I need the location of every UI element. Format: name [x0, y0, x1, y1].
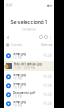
staticText: ▮▮ ▰	[47, 4, 52, 7]
staticText: 15:20	[43, 75, 52, 78]
staticText: elemento	[22, 28, 36, 31]
button[interactable]: Share	[43, 33, 48, 40]
button[interactable]: Cuenta	[4, 41, 54, 49]
button[interactable]: More options	[48, 33, 52, 40]
staticText: ⋮	[48, 35, 52, 39]
staticText: Ordenar	[41, 43, 52, 47]
staticText: 15:20	[43, 102, 52, 105]
staticText: 15:20	[43, 93, 52, 96]
staticText: 10 KB	[13, 95, 22, 98]
staticText: 10 KB	[13, 104, 22, 107]
staticText: 7:32 · 233 KB	[14, 66, 35, 69]
button[interactable]: Foto del archivo.jpg	[4, 61, 54, 71]
button[interactable]: Documento.pdf	[4, 90, 54, 100]
staticText: Documento.pdf	[13, 91, 35, 95]
button[interactable]: Temp.jpg	[4, 81, 54, 91]
staticText: Temp.jpg	[13, 100, 26, 104]
button[interactable]: Temp.jpg	[4, 99, 54, 108]
staticText: Foto del archivo.jpg	[14, 62, 42, 66]
staticText: 9:41	[6, 4, 13, 7]
staticText: 12 KB	[13, 56, 22, 59]
staticText: Temp.jpg	[13, 82, 26, 86]
button[interactable]: Temp.jpg	[4, 72, 54, 82]
staticText: 15:20	[43, 54, 52, 57]
staticText: Cuenta	[11, 43, 21, 47]
staticText: Temp.jpg	[13, 52, 26, 56]
staticText: 10 KB	[13, 86, 22, 89]
staticText: 15:20	[43, 84, 52, 87]
staticText: ‹	[7, 33, 9, 41]
staticText: Se seleccionó 1	[10, 18, 47, 26]
button[interactable]: Temp.jpg	[4, 51, 54, 61]
button[interactable]: Select all	[38, 33, 43, 40]
staticText: Temp.jpg	[13, 73, 26, 77]
button[interactable]: Back	[5, 33, 10, 40]
staticText: 10 KB	[13, 77, 22, 80]
